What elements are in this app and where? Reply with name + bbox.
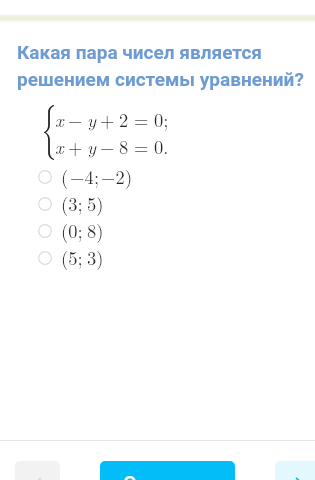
staticText: (0; xyxy=(61,217,83,243)
button[interactable]: Next question xyxy=(275,461,315,480)
staticText: Ответить xyxy=(123,472,212,480)
staticText: 8) xyxy=(87,217,104,243)
staticText: 2 xyxy=(119,106,129,132)
staticText: = xyxy=(134,106,149,132)
staticText: 0; xyxy=(154,106,169,132)
staticText: + xyxy=(68,133,83,159)
button[interactable]: ( xyxy=(0,163,315,190)
button[interactable]: (5; xyxy=(0,244,315,271)
staticText: ( xyxy=(61,163,69,189)
staticText: решением системы уравнений? xyxy=(17,68,304,90)
staticText: 0. xyxy=(154,133,169,159)
button[interactable]: Ответить xyxy=(100,461,235,480)
staticText: 5) xyxy=(87,190,104,216)
staticText: (3; xyxy=(61,190,83,216)
staticText: ; xyxy=(94,163,100,189)
staticText: − xyxy=(100,133,115,159)
staticText: + xyxy=(100,106,115,132)
staticText: x xyxy=(55,106,64,132)
staticText: x xyxy=(55,133,64,159)
staticText: y xyxy=(87,106,96,132)
staticText: 8 xyxy=(119,133,129,159)
staticText: 3) xyxy=(87,244,104,270)
staticText: ) xyxy=(125,163,133,189)
staticText: −4 xyxy=(70,163,94,189)
staticText: y xyxy=(87,133,96,159)
button[interactable]: (0; xyxy=(0,217,315,244)
staticText: −2 xyxy=(101,163,125,189)
staticText: = xyxy=(134,133,149,159)
staticText: Какая пара чисел является xyxy=(17,41,262,63)
staticText: (5; xyxy=(61,244,83,270)
staticText: − xyxy=(68,106,83,132)
button[interactable]: (3; xyxy=(0,190,315,217)
